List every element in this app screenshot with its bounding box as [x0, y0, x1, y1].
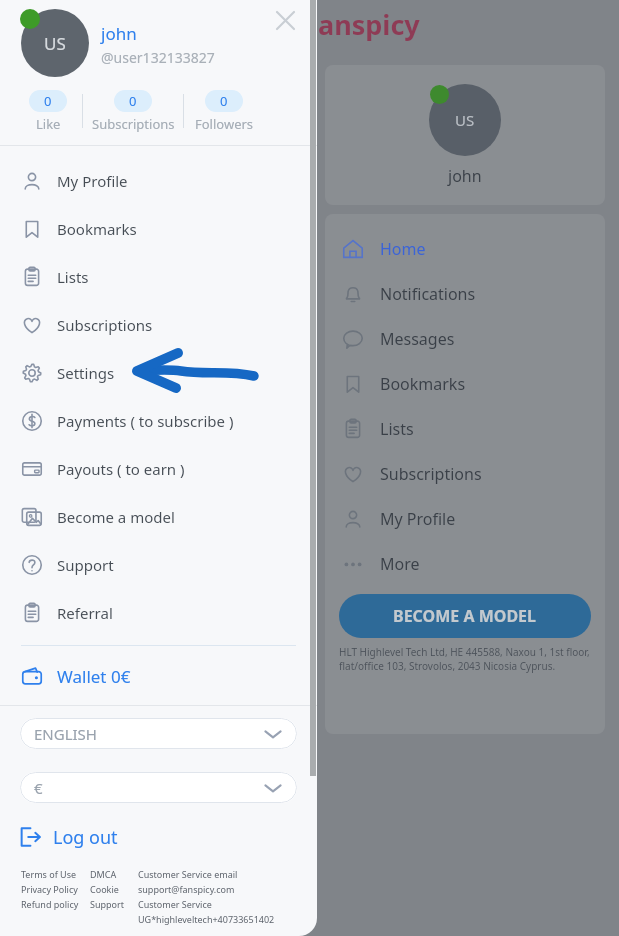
button[interactable]: My Profile	[0, 157, 317, 205]
staticText: €	[34, 778, 43, 798]
button[interactable]: Payments ( to subscribe )	[0, 397, 317, 445]
button[interactable]: Support	[0, 541, 317, 589]
staticText: Payments ( to subscribe )	[57, 411, 234, 431]
staticText: Home	[380, 238, 426, 260]
button[interactable]: Terms of Use	[21, 868, 77, 880]
staticText: 0	[129, 92, 137, 110]
staticText: Subscriptions	[92, 115, 175, 133]
button[interactable]: Payouts ( to earn )	[0, 445, 317, 493]
staticText: Customer Service	[138, 898, 212, 910]
staticText: john	[101, 22, 137, 45]
button[interactable]: ENGLISH	[20, 718, 297, 749]
staticText: HLT Highlevel Tech Ltd, HE 445588, Naxou…	[339, 645, 590, 659]
staticText: Payouts ( to earn )	[57, 459, 185, 479]
staticText: My Profile	[57, 171, 128, 191]
staticText: 0	[44, 92, 52, 110]
staticText: 0	[220, 92, 228, 110]
staticText: BECOME A MODEL	[393, 605, 537, 627]
staticText: Become a model	[57, 507, 175, 527]
staticText: Referral	[57, 603, 113, 623]
staticText: Lists	[57, 267, 89, 287]
button[interactable]: Lists	[0, 253, 317, 301]
button[interactable]: Close	[272, 7, 298, 33]
staticText: john	[448, 165, 482, 187]
button[interactable]: €	[20, 772, 297, 803]
staticText: Notifications	[380, 283, 476, 305]
staticText: My Profile	[380, 508, 456, 530]
staticText: flat/office 103, Strovolos, 2043 Nicosia…	[339, 659, 556, 673]
staticText: Subscriptions	[57, 315, 153, 335]
staticText: Support	[57, 555, 114, 575]
button[interactable]: Subscriptions	[0, 301, 317, 349]
staticText: More	[380, 553, 420, 575]
staticText: Customer Service email	[138, 868, 238, 880]
staticText: DMCA	[90, 868, 117, 880]
button[interactable]: Referral	[0, 589, 317, 637]
staticText: Settings	[57, 363, 115, 383]
staticText: Messages	[380, 328, 455, 350]
staticText: anspicy	[318, 6, 420, 43]
button[interactable]: Settings	[0, 349, 317, 397]
staticText: Bookmarks	[57, 219, 137, 239]
button[interactable]: Privacy Policy	[21, 883, 78, 895]
staticText: Wallet 0€	[57, 665, 131, 688]
staticText: UG*highleveltech+40733651402	[138, 913, 275, 925]
button[interactable]: Bookmarks	[0, 205, 317, 253]
staticText: US	[44, 32, 66, 55]
button[interactable]: Cookie	[90, 883, 119, 895]
staticText: Subscriptions	[380, 463, 482, 485]
staticText: Cookie	[90, 883, 119, 895]
staticText: Followers	[195, 115, 254, 133]
button[interactable]: Log out	[0, 820, 317, 854]
staticText: Like	[36, 115, 61, 133]
staticText: support@fanspicy.com	[138, 883, 235, 895]
staticText: Terms of Use	[21, 868, 77, 880]
staticText: Privacy Policy	[21, 883, 78, 895]
button[interactable]: DMCA	[90, 868, 117, 880]
button[interactable]: Wallet 0€	[0, 652, 317, 700]
staticText: Bookmarks	[380, 373, 466, 395]
button[interactable]: Become a model	[0, 493, 317, 541]
staticText: Refund policy	[21, 898, 79, 910]
button[interactable]: Refund policy	[21, 898, 79, 910]
staticText: Log out	[53, 825, 118, 850]
staticText: Support	[90, 898, 124, 910]
staticText: US	[455, 110, 475, 130]
staticText: @user132133827	[101, 48, 215, 67]
button[interactable]: Support	[90, 898, 124, 910]
staticText: Lists	[380, 418, 414, 440]
staticText: ENGLISH	[34, 724, 97, 744]
